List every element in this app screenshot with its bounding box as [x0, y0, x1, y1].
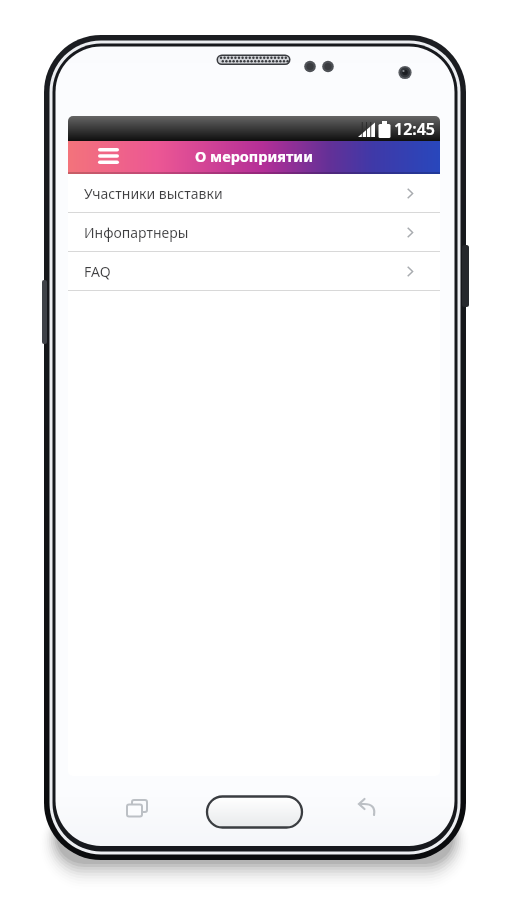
staticText: 12:45	[394, 118, 436, 140]
staticText: О мероприятии	[195, 146, 313, 166]
staticText: Инфопартнеры	[84, 223, 189, 242]
staticText: FAQ	[84, 262, 111, 281]
staticText: Участники выставки	[84, 184, 223, 203]
